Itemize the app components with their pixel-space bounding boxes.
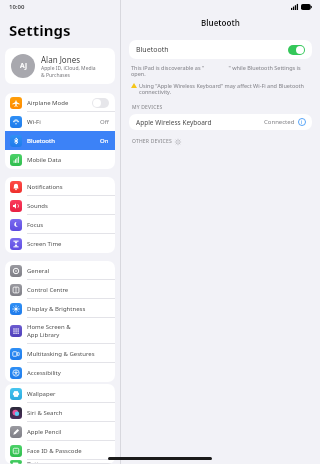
button[interactable]: Mobile Data — [5, 150, 115, 169]
button[interactable]: Notifications — [5, 177, 115, 196]
staticText: Bluetooth — [201, 17, 240, 28]
staticText: Alan Jones — [41, 54, 80, 65]
button[interactable]: AJ — [5, 48, 115, 84]
button[interactable]: Wi-Fi — [5, 112, 115, 131]
staticText: Sounds — [27, 202, 48, 210]
button[interactable]: More info about Apple Wireless Keyboard — [298, 118, 306, 126]
button[interactable]: Apple Pencil — [5, 422, 115, 441]
staticText: OTHER DEVICES — [132, 138, 172, 145]
staticText: Wallpaper — [27, 390, 56, 398]
staticText: Settings — [9, 20, 71, 40]
staticText: Apple ID, iCloud, Media & Purchases — [41, 65, 96, 78]
staticText: i — [301, 119, 303, 126]
button[interactable]: Bluetooth — [129, 40, 312, 59]
button[interactable]: Home Screen & — [5, 318, 115, 344]
button[interactable]: Accessibility — [5, 363, 115, 382]
button[interactable]: Screen Time — [5, 234, 115, 253]
staticText: 10:00 — [9, 3, 25, 11]
button[interactable]: Bluetooth — [5, 131, 115, 150]
button[interactable]: Airplane Mode — [5, 93, 115, 112]
staticText: Off — [100, 118, 109, 126]
button[interactable]: Apple Wireless Keyboard — [129, 114, 312, 130]
button[interactable]: Siri & Search — [5, 403, 115, 422]
staticText: Bluetooth — [27, 137, 55, 145]
button[interactable]: General — [5, 261, 115, 280]
staticText: MY DEVICES — [132, 104, 163, 111]
staticText: On — [100, 137, 109, 145]
staticText: Battery — [27, 460, 48, 464]
staticText: Airplane Mode — [27, 99, 69, 107]
staticText: App Library — [27, 331, 60, 339]
staticText: Notifications — [27, 183, 63, 191]
button[interactable]: Sounds — [5, 196, 115, 215]
button[interactable]: Display & Brightness — [5, 299, 115, 318]
button[interactable]: Focus — [5, 215, 115, 234]
staticText: Apple Pencil — [27, 428, 62, 436]
staticText: Connected — [264, 118, 295, 126]
staticText: Control Centre — [27, 286, 69, 294]
button[interactable]: Airplane Mode toggle — [92, 98, 109, 108]
button[interactable]: Multitasking & Gestures — [5, 344, 115, 363]
button[interactable]: Control Centre — [5, 280, 115, 299]
button[interactable]: Face ID & Passcode — [5, 441, 115, 460]
button[interactable]: Wallpaper — [5, 384, 115, 403]
staticText: Accessibility — [27, 369, 61, 377]
staticText: Multitasking & Gestures — [27, 350, 95, 358]
staticText: Siri & Search — [27, 409, 63, 417]
staticText: Bluetooth — [136, 45, 169, 55]
button[interactable]: Bluetooth toggle — [288, 45, 305, 55]
staticText: Home Screen & — [27, 323, 71, 331]
staticText: Using "Apple Wireless Keyboard" may affe… — [139, 82, 304, 96]
staticText: Apple Wireless Keyboard — [136, 118, 212, 127]
staticText: Wi-Fi — [27, 118, 41, 126]
staticText: Focus — [27, 221, 44, 229]
staticText: Display & Brightness — [27, 305, 86, 313]
staticText: AJ — [20, 61, 27, 71]
staticText: This iPad is discoverable as " " while B… — [131, 64, 301, 78]
staticText: Screen Time — [27, 240, 62, 248]
button[interactable]: Battery — [5, 460, 115, 464]
staticText: Face ID & Passcode — [27, 447, 82, 455]
staticText: General — [27, 267, 50, 275]
staticText: Mobile Data — [27, 156, 62, 164]
